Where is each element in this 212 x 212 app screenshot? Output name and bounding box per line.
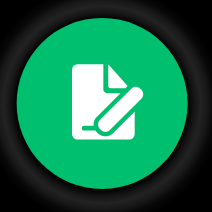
button[interactable]: Edit document <box>0 0 212 212</box>
